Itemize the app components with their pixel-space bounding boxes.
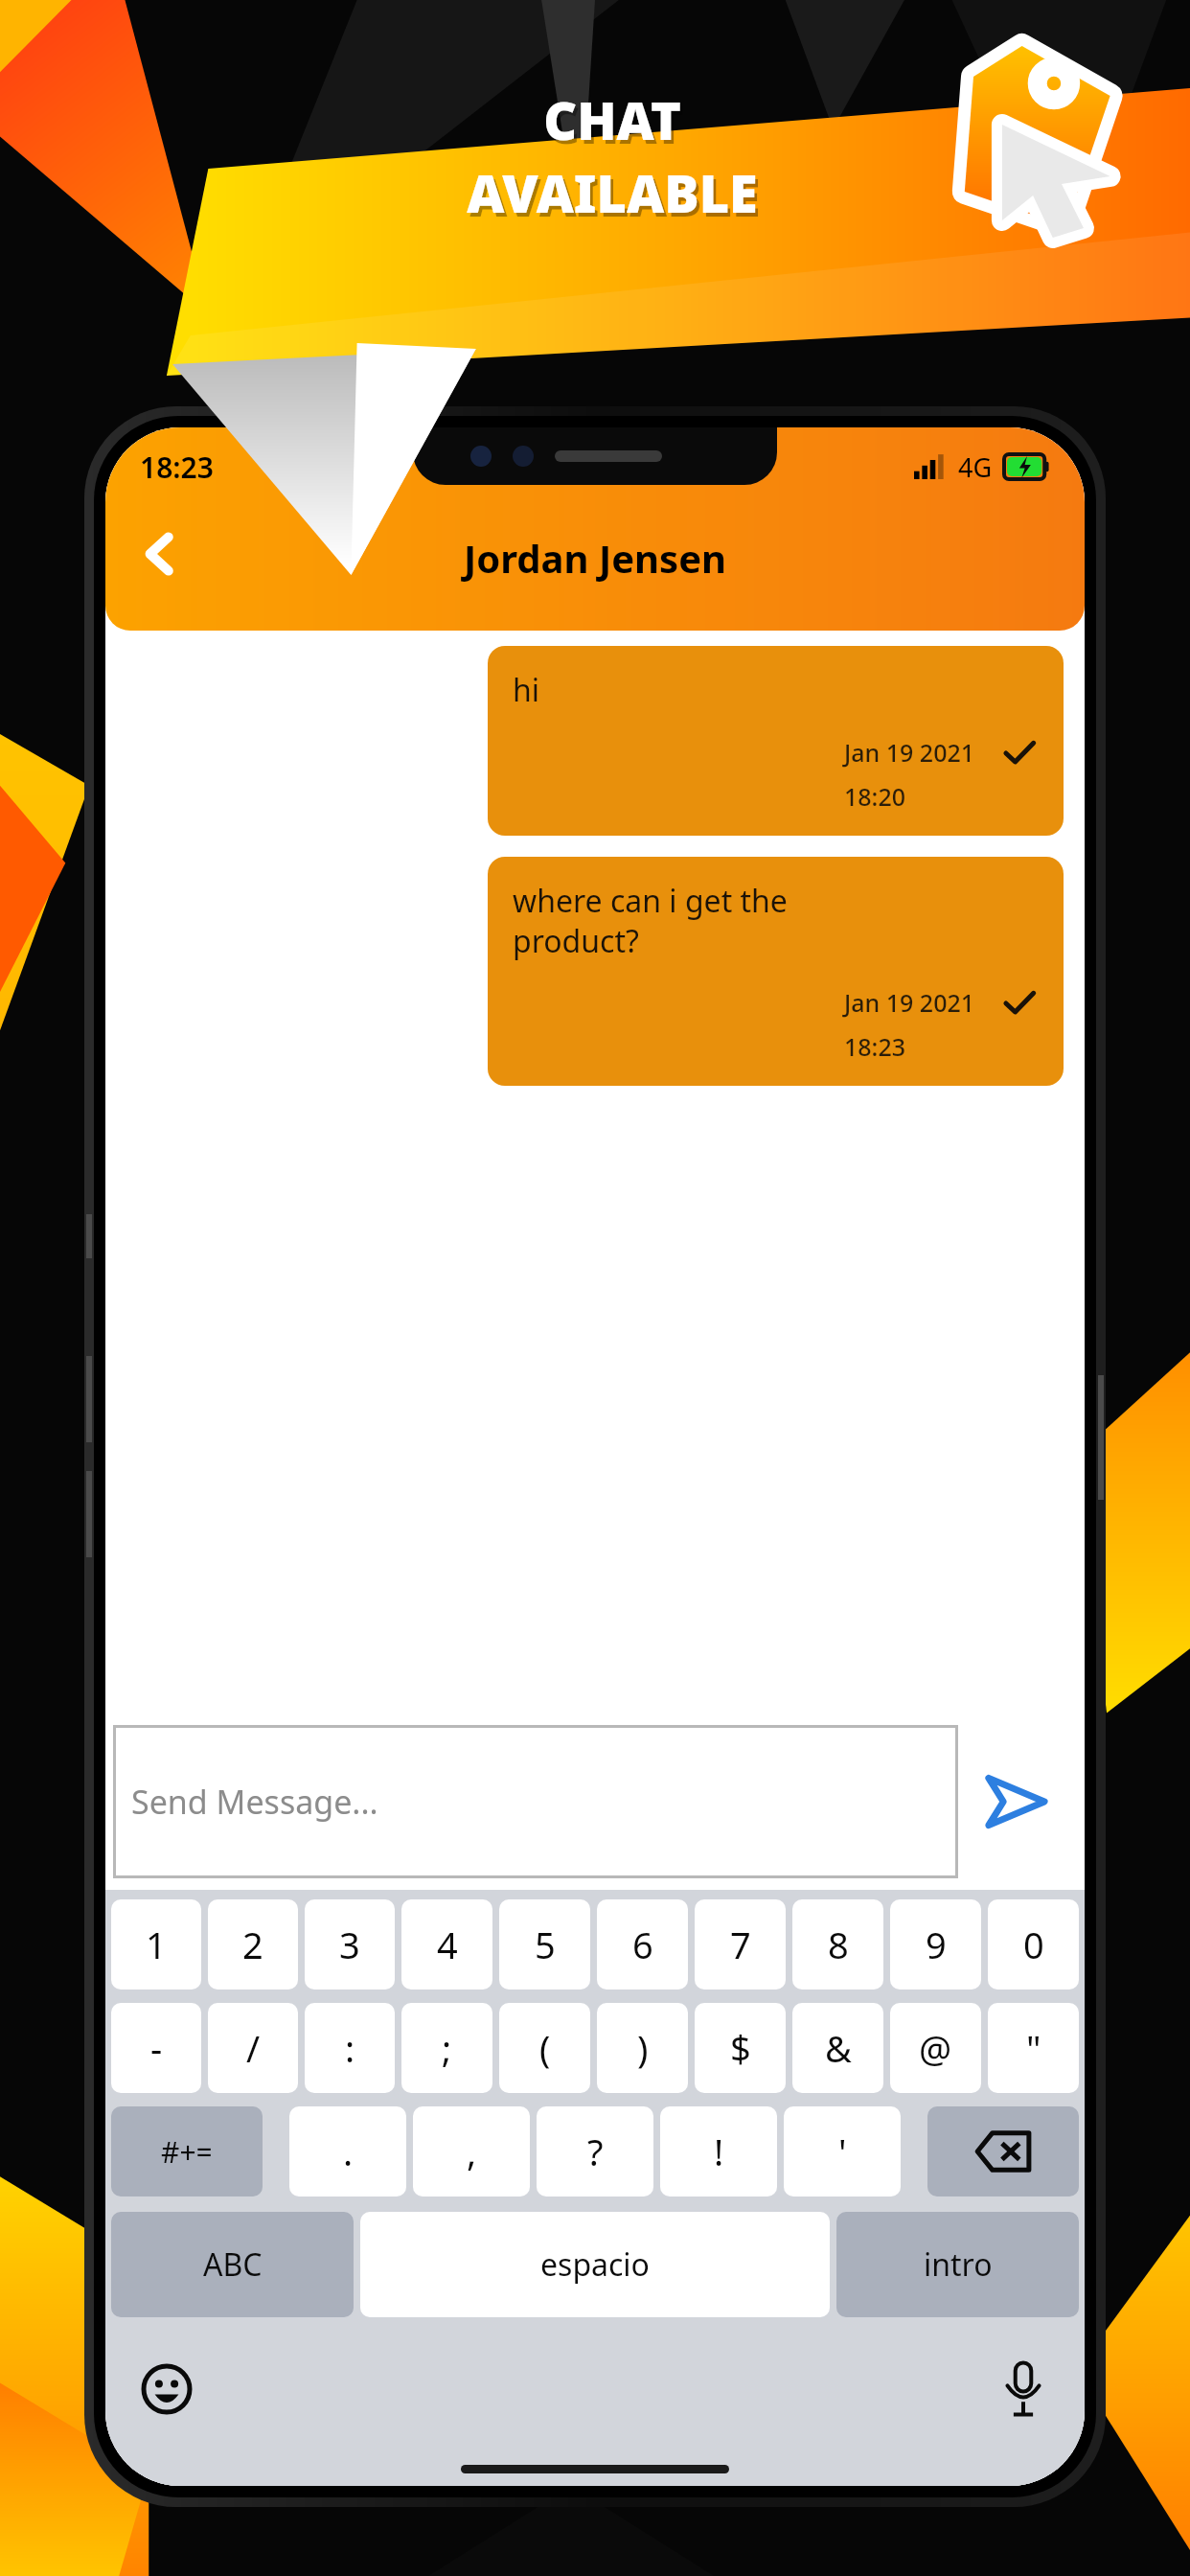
staticText: Jan 19 2021 (844, 736, 975, 769)
staticText: 18:23 (844, 1030, 906, 1063)
staticText: where can i get the product? (513, 880, 788, 961)
button[interactable]: 8 (792, 1899, 883, 1989)
button[interactable]: . (289, 2106, 406, 2196)
staticText: AVAILABLE (467, 157, 758, 228)
button[interactable]: Voice input (987, 2353, 1060, 2426)
staticText: 18:20 (844, 780, 906, 813)
staticText: 6 (632, 1920, 653, 1969)
staticText: @ (919, 2023, 952, 2073)
staticText: ; (442, 2023, 452, 2073)
button[interactable]: 7 (695, 1899, 786, 1989)
staticText: 5 (535, 1920, 556, 1969)
staticText: CHAT (543, 84, 681, 155)
button[interactable]: #+= (111, 2106, 263, 2196)
staticText: Jan 19 2021 (844, 986, 975, 1019)
button[interactable]: ' (784, 2106, 901, 2196)
button[interactable]: where can i get the product? (488, 857, 1064, 1086)
staticText: ( (539, 2023, 551, 2073)
staticText: 7 (730, 1920, 751, 1969)
button[interactable]: 2 (208, 1899, 298, 1989)
button[interactable]: Back (119, 513, 201, 595)
staticText: ) (637, 2023, 649, 2073)
staticText: - (150, 2023, 163, 2073)
staticText: hi (513, 669, 540, 711)
button[interactable]: 9 (890, 1899, 981, 1989)
staticText: 2 (242, 1920, 263, 1969)
button[interactable]: 6 (597, 1899, 688, 1989)
staticText: , (467, 2127, 477, 2176)
button[interactable]: Emoji (130, 2353, 203, 2426)
button[interactable]: intro (836, 2212, 1079, 2317)
staticText: 18:23 (140, 448, 214, 487)
button[interactable]: Backspace (927, 2106, 1079, 2196)
staticText: 0 (1023, 1920, 1044, 1969)
button[interactable]: & (792, 2003, 883, 2093)
button[interactable]: ( (499, 2003, 590, 2093)
staticText: . (343, 2127, 354, 2176)
button[interactable]: 5 (499, 1899, 590, 1989)
button[interactable]: Send (958, 1725, 1073, 1878)
staticText: Jordan Jensen (464, 532, 727, 584)
staticText: $ (730, 2023, 751, 2073)
button[interactable]: : (305, 2003, 395, 2093)
button[interactable]: ! (660, 2106, 777, 2196)
staticText: / (246, 2023, 261, 2073)
staticText: & (825, 2023, 852, 2073)
staticText: ? (587, 2127, 604, 2176)
staticText: 1 (146, 1920, 167, 1969)
button[interactable]: 3 (305, 1899, 395, 1989)
button[interactable]: - (111, 2003, 201, 2093)
staticText: ABC (203, 2243, 263, 2286)
staticText: ! (714, 2127, 724, 2176)
staticText: 4 (437, 1920, 458, 1969)
button[interactable]: 1 (111, 1899, 201, 1989)
button[interactable]: ? (537, 2106, 653, 2196)
staticText: CHAT (546, 88, 684, 159)
staticText: 8 (828, 1920, 849, 1969)
staticText: espacio (540, 2243, 650, 2286)
staticText: 3 (339, 1920, 360, 1969)
button[interactable]: , (413, 2106, 530, 2196)
staticText: AVAILABLE (469, 161, 761, 232)
button[interactable]: 0 (988, 1899, 1079, 1989)
button[interactable]: @ (890, 2003, 981, 2093)
button[interactable]: hi (488, 646, 1064, 836)
button[interactable]: $ (695, 2003, 786, 2093)
button[interactable]: espacio (360, 2212, 830, 2317)
staticText: ' (838, 2127, 847, 2176)
staticText: 9 (926, 1920, 947, 1969)
staticText: " (1026, 2023, 1041, 2073)
button[interactable]: ) (597, 2003, 688, 2093)
staticText: : (345, 2023, 355, 2073)
button[interactable]: ABC (111, 2212, 354, 2317)
staticText: #+= (161, 2132, 213, 2172)
button[interactable]: ; (401, 2003, 492, 2093)
staticText: 4G (958, 449, 993, 485)
button[interactable]: " (988, 2003, 1079, 2093)
staticText: intro (924, 2243, 993, 2286)
button[interactable]: 4 (401, 1899, 492, 1989)
button[interactable]: Send Message... (116, 1728, 955, 1875)
staticText: Send Message... (131, 1780, 378, 1824)
button[interactable]: / (208, 2003, 298, 2093)
